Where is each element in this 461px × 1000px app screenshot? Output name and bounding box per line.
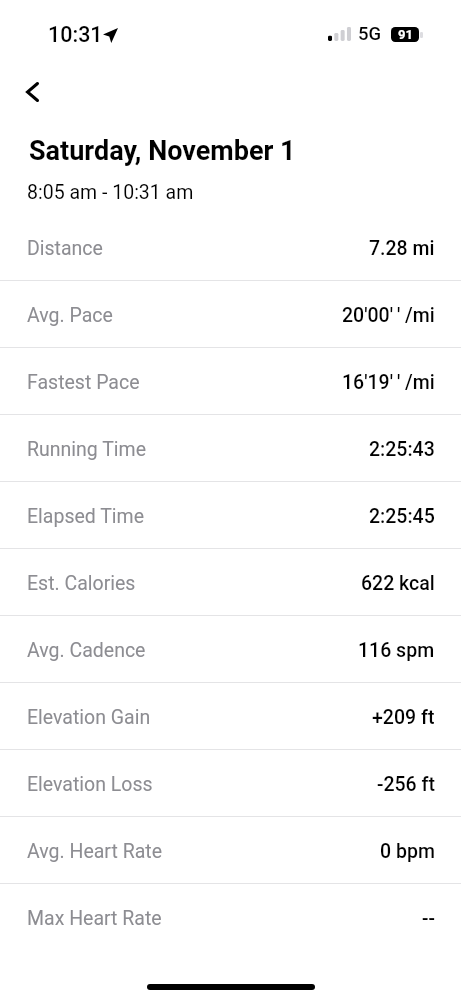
staticText: -256 ft [377, 773, 435, 796]
staticText: 7.28 mi [369, 237, 435, 260]
button[interactable]: Elevation Loss [0, 750, 461, 817]
staticText: +209 ft [372, 706, 435, 729]
button[interactable]: Max Heart Rate [0, 884, 461, 951]
button[interactable]: Fastest Pace [0, 348, 461, 415]
button[interactable]: Distance [0, 214, 461, 281]
button[interactable]: Est. Calories [0, 549, 461, 616]
staticText: Fastest Pace [27, 371, 140, 394]
staticText: 5G [358, 23, 382, 45]
button[interactable]: Elevation Gain [0, 683, 461, 750]
button[interactable]: Elapsed Time [0, 482, 461, 549]
button[interactable]: Running Time [0, 415, 461, 482]
staticText: 116 spm [358, 639, 435, 662]
staticText: 2:25:43 [369, 438, 435, 461]
button[interactable]: Avg. Heart Rate [0, 817, 461, 884]
staticText: 8:05 am - 10:31 am [27, 181, 194, 204]
staticText: 0 bpm [380, 840, 435, 863]
staticText: 20'00' ' /mi [342, 304, 435, 327]
staticText: 622 kcal [361, 572, 435, 595]
staticText: Saturday, November 1 [29, 135, 296, 167]
staticText: Running Time [27, 438, 147, 461]
staticText: -- [422, 907, 435, 930]
button[interactable]: Back [9, 62, 55, 112]
staticText: 91 [398, 27, 413, 42]
button[interactable]: Avg. Cadence [0, 616, 461, 683]
staticText: Avg. Pace [27, 304, 113, 327]
staticText: Elevation Gain [27, 706, 151, 729]
staticText: Est. Calories [27, 572, 136, 595]
staticText: 2:25:45 [369, 505, 435, 528]
button[interactable]: Avg. Pace [0, 281, 461, 348]
staticText: 16'19' ' /mi [342, 371, 435, 394]
staticText: Avg. Heart Rate [27, 840, 162, 863]
staticText: Distance [27, 237, 103, 260]
staticText: Max Heart Rate [27, 907, 162, 930]
staticText: Elevation Loss [27, 773, 153, 796]
staticText: Elapsed Time [27, 505, 145, 528]
staticText: Avg. Cadence [27, 639, 146, 662]
staticText: 10:31 [48, 22, 103, 47]
